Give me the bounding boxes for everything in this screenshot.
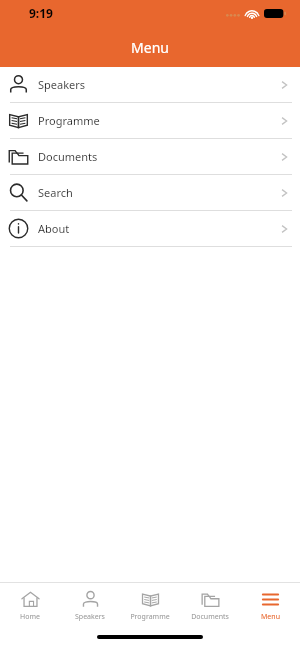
other: Search [8,182,29,203]
other: Documents [8,146,29,167]
staticText: Programme [38,113,100,128]
staticText: Menu [261,612,280,622]
other: Speakers [8,74,29,95]
other: Programme [8,110,29,131]
button[interactable]: Home [0,583,60,629]
other: About [8,218,29,239]
button[interactable]: Programme [120,583,180,629]
button[interactable]: Menu [240,583,300,629]
button[interactable]: Documents [0,139,300,175]
button[interactable]: Documents [180,583,240,629]
staticText: Programme [130,612,170,622]
staticText: Menu [131,38,169,57]
staticText: Home [20,612,40,622]
staticText: Speakers [38,77,86,92]
button[interactable]: Speakers [60,583,120,629]
staticText: 9:19 [29,5,53,21]
button[interactable]: Search [0,175,300,211]
staticText: Search [38,185,73,200]
staticText: Documents [191,612,229,622]
staticText: Speakers [75,612,105,622]
staticText: About [38,221,70,236]
button[interactable]: About [0,211,300,247]
staticText: Documents [38,149,98,164]
button[interactable]: Programme [0,103,300,139]
button[interactable]: Speakers [0,67,300,103]
